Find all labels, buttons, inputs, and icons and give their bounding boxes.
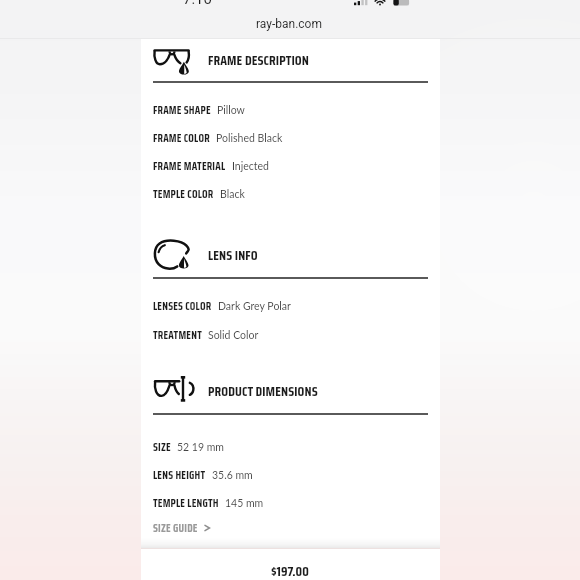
staticText: ray-ban.com bbox=[256, 17, 322, 31]
staticText: TEMPLE LENGTH bbox=[153, 495, 219, 511]
button[interactable]: FRAME SHAPE bbox=[153, 102, 428, 118]
staticText: $197.00 bbox=[271, 560, 309, 580]
staticText: SIZE GUIDE bbox=[153, 520, 198, 536]
staticText: LENSES COLOR bbox=[153, 298, 212, 314]
other: Status icons bbox=[354, 0, 414, 8]
button[interactable]: SIZE bbox=[153, 439, 428, 455]
staticText: 52 19 mm bbox=[177, 441, 225, 454]
staticText: FRAME MATERIAL bbox=[153, 158, 226, 174]
button[interactable]: TEMPLE COLOR bbox=[153, 186, 428, 202]
staticText: Black bbox=[220, 188, 245, 201]
staticText: SIZE bbox=[153, 439, 171, 455]
staticText: Pillow bbox=[217, 104, 245, 117]
staticText: LENS HEIGHT bbox=[153, 467, 206, 483]
button[interactable]: FRAME MATERIAL bbox=[153, 158, 428, 174]
staticText: TEMPLE COLOR bbox=[153, 186, 214, 202]
staticText: FRAME COLOR bbox=[153, 130, 210, 146]
staticText: FRAME SHAPE bbox=[153, 102, 211, 118]
staticText: PRODUCT DIMENSIONS bbox=[208, 381, 318, 402]
staticText: Dark Grey Polar bbox=[218, 300, 291, 313]
staticText: Polished Black bbox=[216, 132, 283, 145]
staticText: 7:10 bbox=[183, 0, 212, 8]
staticText: Solid Color bbox=[208, 329, 259, 342]
button[interactable]: LENSES COLOR bbox=[153, 298, 428, 314]
staticText: TREATMENT bbox=[153, 327, 202, 343]
button[interactable]: TEMPLE LENGTH bbox=[153, 495, 428, 511]
staticText: Injected bbox=[232, 160, 269, 173]
staticText: 35.6 mm bbox=[212, 469, 253, 482]
button[interactable]: LENS HEIGHT bbox=[153, 467, 428, 483]
button[interactable]: SIZE GUIDE bbox=[153, 520, 212, 536]
button[interactable]: FRAME COLOR bbox=[153, 130, 428, 146]
button[interactable]: TREATMENT bbox=[153, 327, 428, 343]
staticText: FRAME DESCRIPTION bbox=[208, 50, 309, 71]
staticText: LENS INFO bbox=[208, 245, 258, 266]
staticText: 145 mm bbox=[225, 497, 264, 510]
